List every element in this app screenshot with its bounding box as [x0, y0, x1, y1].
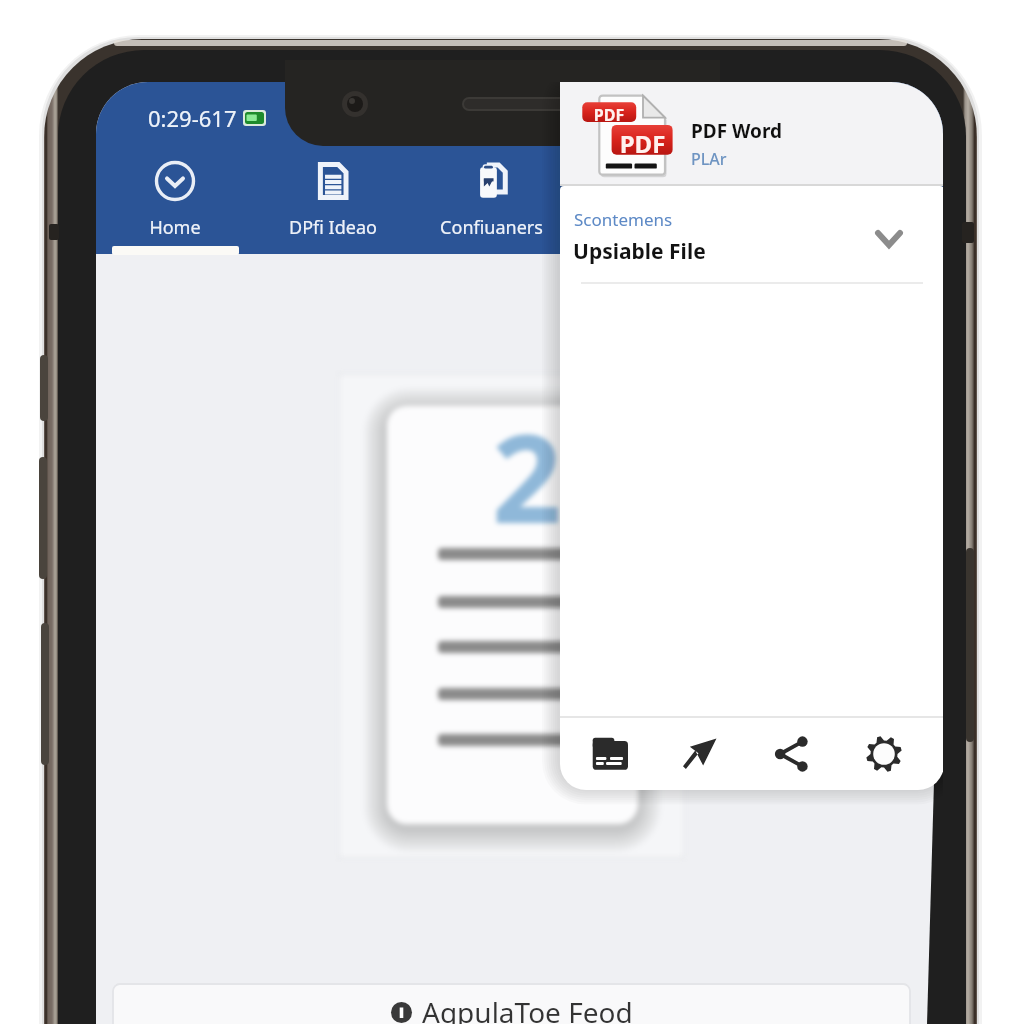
staticText: 2 [492, 393, 562, 559]
button[interactable]: Confiuaners [412, 145, 570, 240]
staticText: AgpulaToe Feod [422, 993, 633, 1024]
button[interactable]: Settings [838, 718, 930, 789]
staticText: PDF Word [691, 118, 783, 144]
button[interactable]: Documents [564, 718, 655, 789]
staticText: Scontemens [574, 208, 673, 231]
staticText: Confiuaners [440, 215, 543, 240]
staticText: PLAr [691, 148, 727, 170]
button[interactable]: AgpulaToe Feod [113, 984, 910, 1024]
staticText: Home [149, 215, 201, 240]
staticText: PDF [612, 127, 673, 160]
staticText: PDF [582, 104, 636, 126]
staticText: DPfi Ideao [289, 215, 377, 240]
button[interactable]: Share [746, 718, 838, 789]
button[interactable]: Scontemens [560, 186, 943, 281]
button[interactable] [560, 82, 943, 186]
staticText: Upsiable File [573, 237, 706, 266]
button[interactable]: Home [96, 145, 254, 240]
button[interactable]: Open [655, 718, 746, 789]
button[interactable]: DPfi Ideao [254, 145, 412, 240]
staticText: 0:29-617 [148, 103, 237, 133]
